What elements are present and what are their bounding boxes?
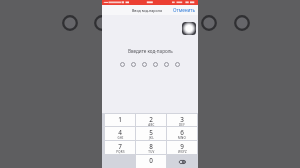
button[interactable]: 3 [167, 114, 197, 126]
staticText: TUV [148, 150, 155, 154]
staticText: JKL [149, 136, 154, 140]
staticText: 3 [180, 115, 184, 124]
staticText: 9 [180, 142, 184, 151]
staticText: ABC [148, 123, 155, 127]
button[interactable]: Отменить [171, 6, 198, 14]
staticText: GHI [117, 136, 124, 140]
button[interactable]: 7 [105, 141, 135, 154]
staticText: 4 [118, 128, 122, 137]
staticText: PQRS [116, 150, 125, 154]
staticText: 7 [118, 142, 122, 151]
button[interactable]: Delete [167, 155, 197, 168]
button[interactable]: 0 [136, 155, 166, 168]
button[interactable]: 1 [105, 114, 135, 126]
staticText: WXYZ [178, 150, 187, 154]
staticText: 6 [180, 128, 184, 137]
staticText: 8 [149, 142, 153, 151]
button[interactable]: 6 [167, 127, 197, 140]
staticText: Введите код-пароль [128, 48, 173, 54]
staticText: 1 [118, 115, 122, 124]
staticText: 5 [149, 128, 153, 137]
staticText: Отменить [173, 7, 196, 13]
button[interactable]: 5 [136, 127, 166, 140]
button[interactable]: 4 [105, 127, 135, 140]
button[interactable]: 9 [167, 141, 197, 154]
button[interactable]: Recording indicator [182, 22, 196, 35]
staticText: DEF [179, 123, 185, 127]
staticText: Ввод код-пароля [132, 8, 162, 13]
button[interactable]: 8 [136, 141, 166, 154]
button[interactable]: 2 [136, 114, 166, 126]
staticText: 0 [149, 156, 153, 165]
staticText: MNO [178, 136, 186, 140]
staticText: 2 [149, 115, 153, 124]
